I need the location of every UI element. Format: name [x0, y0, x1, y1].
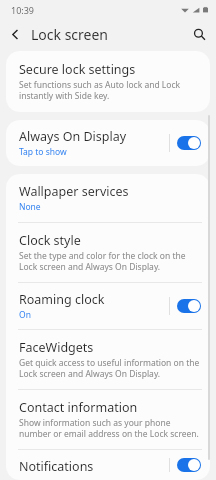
- staticText: Always On Display: [19, 128, 127, 145]
- button[interactable]: Search: [187, 22, 211, 46]
- button[interactable]: Always On Display: [6, 120, 210, 166]
- staticText: On: [19, 309, 31, 321]
- staticText: Wallpaper services: [19, 183, 129, 200]
- staticText: Notifications: [19, 458, 94, 472]
- button[interactable]: Toggle on: [177, 458, 201, 472]
- staticText: Lock screen: [31, 25, 109, 44]
- staticText: Clock style: [19, 232, 81, 249]
- staticText: Roaming clock: [19, 291, 105, 308]
- staticText: 10:39: [11, 4, 35, 16]
- button[interactable]: Toggle on: [177, 136, 201, 150]
- button[interactable]: FaceWidgets: [6, 330, 210, 389]
- button[interactable]: Toggle on: [177, 299, 201, 313]
- button[interactable]: Notifications: [6, 450, 210, 480]
- button[interactable]: Wallpaper services: [6, 174, 210, 222]
- button[interactable]: Clock style: [6, 223, 210, 282]
- button[interactable]: Contact information: [6, 390, 210, 449]
- button[interactable]: Secure lock settings: [6, 51, 210, 112]
- button[interactable]: Back: [4, 23, 26, 45]
- staticText: Show information such as your phone numb…: [19, 417, 201, 439]
- staticText: Contact information: [19, 399, 138, 416]
- staticText: FaceWidgets: [19, 339, 94, 356]
- button[interactable]: Roaming clock: [6, 283, 210, 329]
- staticText: Set the type and color for the clock on …: [19, 250, 201, 272]
- staticText: Get quick access to useful information o…: [19, 357, 201, 379]
- staticText: Tap to show: [19, 146, 67, 158]
- staticText: Set functions such as Auto lock and Lock…: [19, 79, 201, 101]
- staticText: Secure lock settings: [19, 61, 136, 78]
- staticText: None: [19, 201, 41, 213]
